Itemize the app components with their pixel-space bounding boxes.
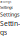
staticText: Settings xyxy=(0,19,20,36)
staticText: Settings xyxy=(0,0,11,3)
staticText: Settings xyxy=(0,4,13,10)
staticText: Settings xyxy=(0,11,20,18)
